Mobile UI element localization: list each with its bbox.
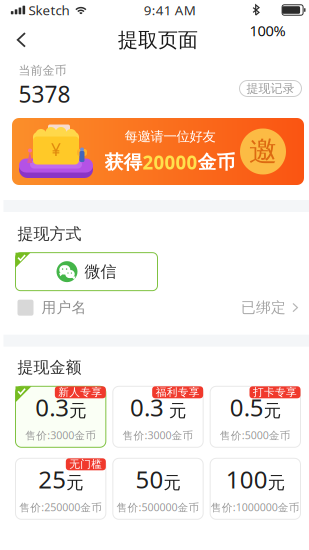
- button[interactable]: 100: [210, 458, 300, 519]
- button[interactable]: 微信: [3, 244, 157, 291]
- staticText: 获得: [104, 151, 142, 174]
- staticText: 售价:500000金币: [116, 500, 199, 514]
- staticText: 25: [38, 463, 66, 495]
- staticText: 邀: [249, 134, 277, 169]
- staticText: 5378: [18, 79, 70, 109]
- button[interactable]: 0.3: [113, 386, 203, 447]
- staticText: 元: [66, 472, 83, 493]
- staticText: 售价:3000金币: [25, 428, 96, 442]
- staticText: 提现金额: [17, 358, 81, 377]
- button[interactable]: 25: [15, 458, 106, 519]
- button[interactable]: Back: [3, 20, 36, 60]
- button[interactable]: 提现记录: [239, 80, 301, 97]
- staticText: 每邀请一位好友: [124, 128, 215, 145]
- staticText: 无门槛: [69, 458, 102, 471]
- staticText: 100: [226, 463, 268, 495]
- staticText: 50: [135, 463, 163, 495]
- button[interactable]: 用户名: [3, 291, 309, 325]
- staticText: 9:41 AM: [144, 1, 196, 19]
- button[interactable]: 50: [113, 458, 203, 519]
- staticText: 打卡专享: [253, 386, 297, 399]
- staticText: 售价:250000金币: [19, 500, 102, 514]
- staticText: 20000: [142, 150, 197, 175]
- staticText: 提现方式: [17, 224, 81, 244]
- button[interactable]: 0.5: [210, 386, 300, 447]
- staticText: 微信: [84, 262, 116, 281]
- staticText: 福利专享: [156, 386, 200, 399]
- staticText: 新人专享: [58, 386, 102, 399]
- staticText: 金币: [197, 151, 235, 174]
- staticText: Sketch: [28, 1, 69, 19]
- staticText: 售价:5000金币: [220, 428, 291, 442]
- button[interactable]: 0.3: [15, 386, 106, 447]
- staticText: 0.3: [130, 391, 164, 423]
- staticText: 元: [264, 400, 281, 421]
- staticText: 0.5: [230, 391, 264, 423]
- staticText: 元: [164, 400, 186, 421]
- staticText: 元: [163, 472, 180, 493]
- staticText: 当前金币: [18, 63, 66, 78]
- staticText: ¥: [51, 138, 61, 161]
- staticText: 元: [268, 472, 285, 493]
- staticText: 100%: [249, 21, 285, 40]
- staticText: 售价:3000金币: [122, 428, 193, 442]
- staticText: 售价:1000000金币: [211, 500, 300, 514]
- staticText: 提取页面: [118, 28, 198, 52]
- staticText: 已绑定: [241, 299, 286, 317]
- staticText: 元: [69, 400, 86, 421]
- staticText: 0.3: [35, 391, 69, 423]
- staticText: 用户名: [41, 299, 86, 317]
- staticText: 提现记录: [246, 81, 294, 96]
- button[interactable]: ¥: [0, 118, 309, 185]
